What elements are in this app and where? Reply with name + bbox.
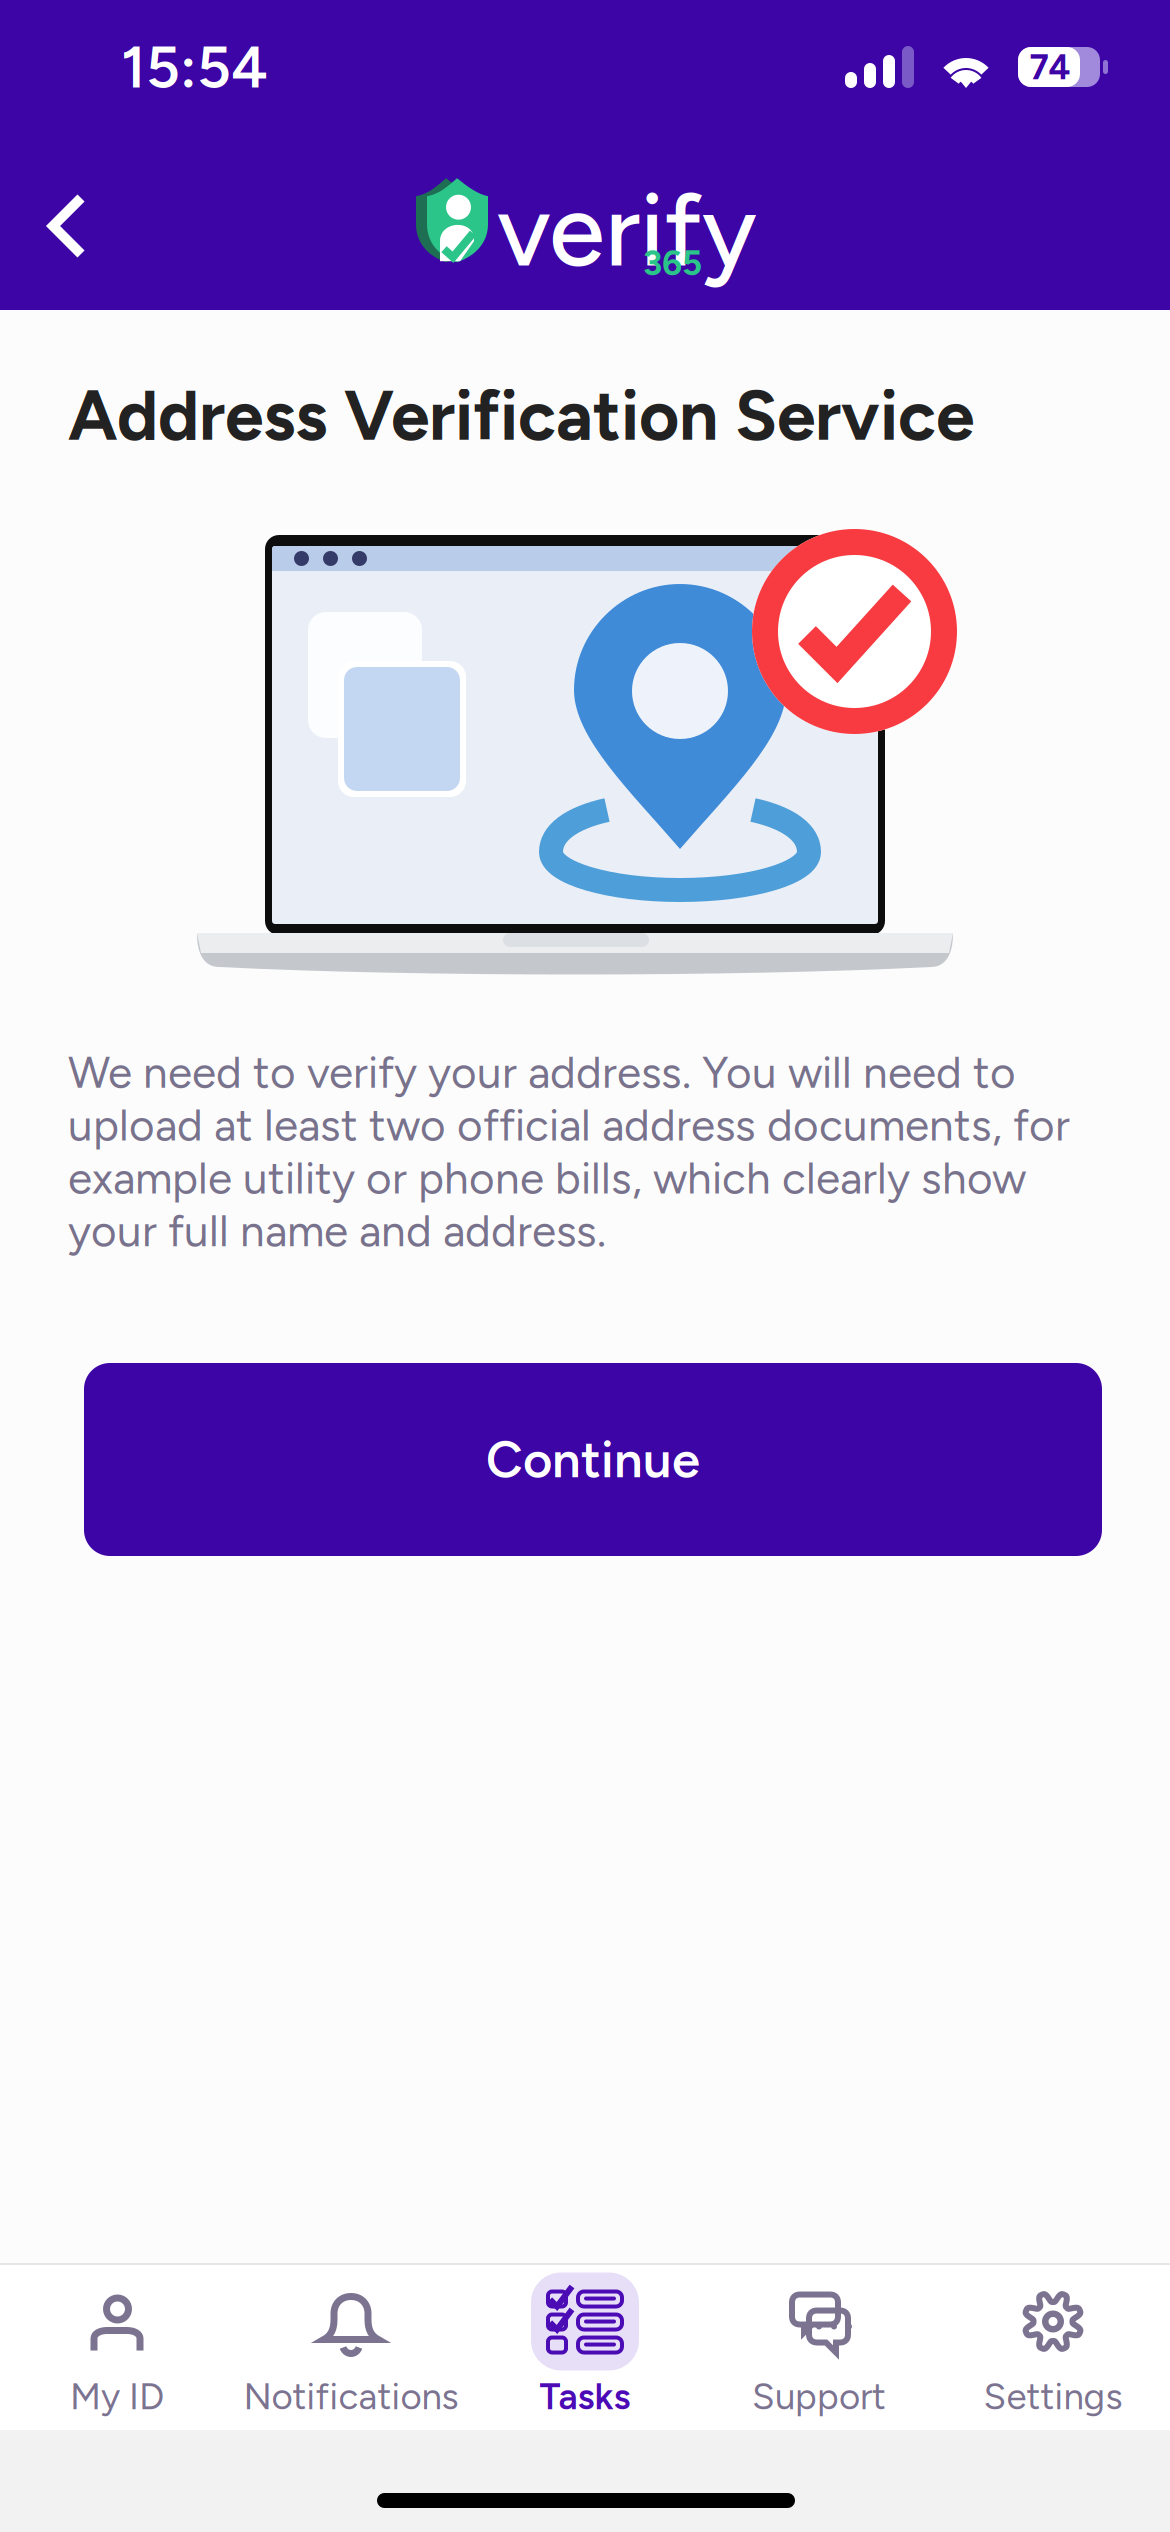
staticText: 74 <box>1029 46 1070 88</box>
staticText: Address Verification Service <box>68 374 974 457</box>
button[interactable]: Settings <box>936 2272 1170 2422</box>
button[interactable]: Back <box>6 164 128 288</box>
staticText: Support <box>752 2374 886 2418</box>
staticText: 15:54 <box>121 32 268 102</box>
button[interactable]: Continue <box>84 1363 1102 1556</box>
staticText: We need to verify your address. You will… <box>68 1046 1070 1257</box>
staticText: verify <box>497 169 757 291</box>
button[interactable]: Notifications <box>234 2272 468 2422</box>
button[interactable]: Support <box>702 2272 936 2422</box>
staticText: Settings <box>983 2374 1122 2418</box>
button[interactable]: Tasks <box>468 2272 702 2422</box>
button[interactable]: My ID <box>0 2272 234 2422</box>
staticText: My ID <box>70 2374 164 2418</box>
staticText: 365 <box>643 242 702 284</box>
staticText: Continue <box>486 1429 700 1490</box>
staticText: Notifications <box>243 2374 458 2418</box>
staticText: Tasks <box>539 2374 630 2418</box>
